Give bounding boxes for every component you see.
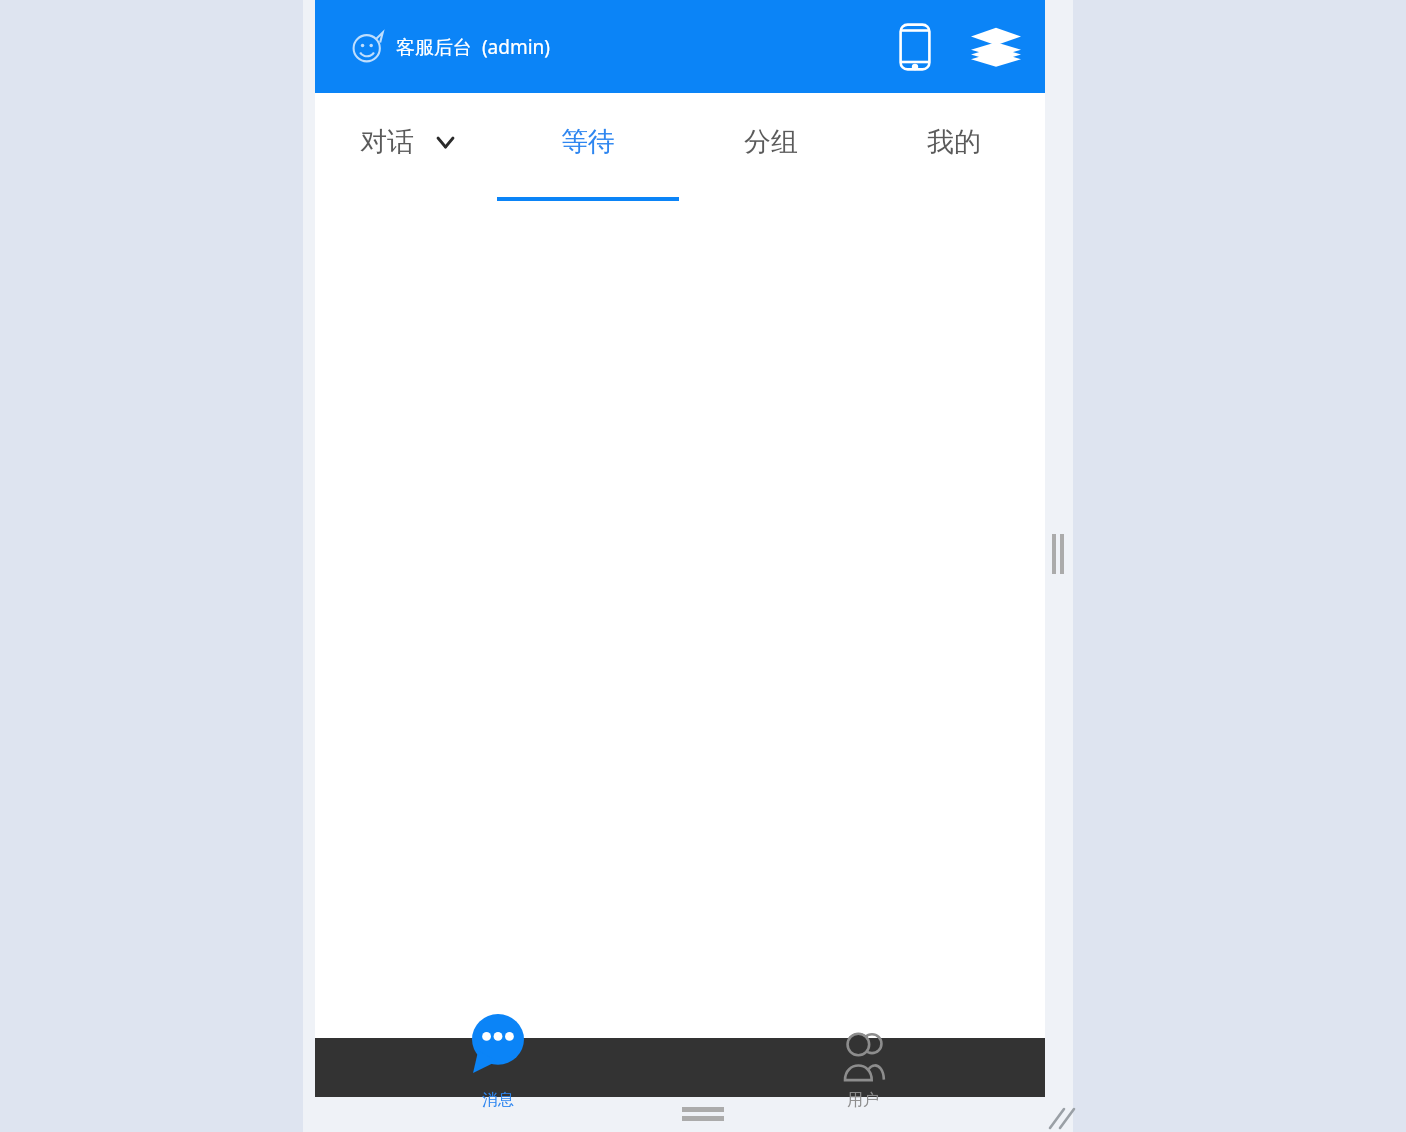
button[interactable]: 对话 (315, 93, 497, 205)
staticText: 对话 (360, 125, 414, 159)
staticText: 我的 (927, 125, 981, 159)
staticText: 消息 (482, 1090, 514, 1110)
staticText: 用户 (847, 1090, 879, 1110)
button[interactable]: 用户 (680, 1038, 1045, 1097)
staticText: 分组 (744, 125, 798, 159)
button[interactable]: 等待 (497, 93, 679, 205)
button[interactable]: Mobile preview (888, 20, 942, 74)
button[interactable]: 分组 (679, 93, 862, 205)
staticText: 等待 (561, 125, 615, 159)
button[interactable]: 我的 (862, 93, 1045, 205)
button[interactable]: 客服后台 (admin) (352, 31, 551, 63)
button[interactable]: Layers (969, 20, 1023, 74)
staticText: 客服后台 (admin) (396, 34, 551, 60)
button[interactable]: 消息 (315, 1038, 680, 1097)
